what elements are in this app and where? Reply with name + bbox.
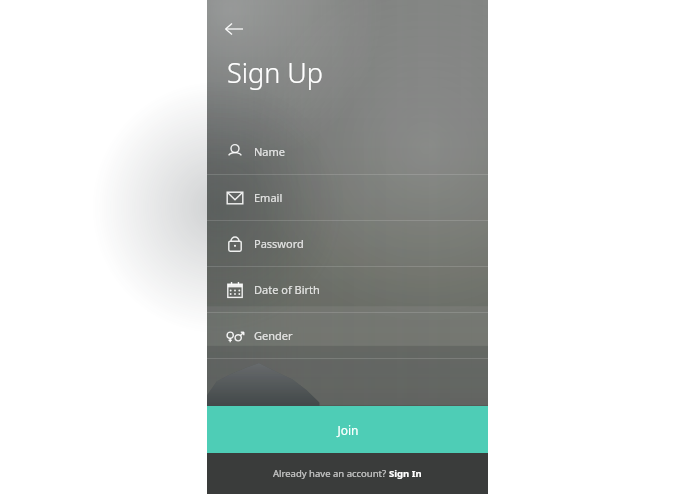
button[interactable]: Back xyxy=(217,12,251,46)
button[interactable]: Password xyxy=(207,221,488,267)
button[interactable]: Gender xyxy=(207,313,488,359)
button[interactable]: Date of Birth xyxy=(207,267,488,313)
staticText: Sign Up xyxy=(227,54,323,91)
staticText: Name xyxy=(254,144,286,159)
button[interactable]: Name xyxy=(207,129,488,175)
staticText: Gender xyxy=(254,328,293,343)
staticText: Join xyxy=(337,422,359,438)
button[interactable]: Email xyxy=(207,175,488,221)
staticText: Sign In xyxy=(389,467,422,480)
button[interactable]: Already have an account? xyxy=(207,453,488,494)
button[interactable]: Join xyxy=(207,406,488,453)
staticText: Already have an account? xyxy=(273,467,389,480)
staticText: Password xyxy=(254,236,304,251)
staticText: Date of Birth xyxy=(254,282,320,297)
staticText: Email xyxy=(254,190,283,205)
